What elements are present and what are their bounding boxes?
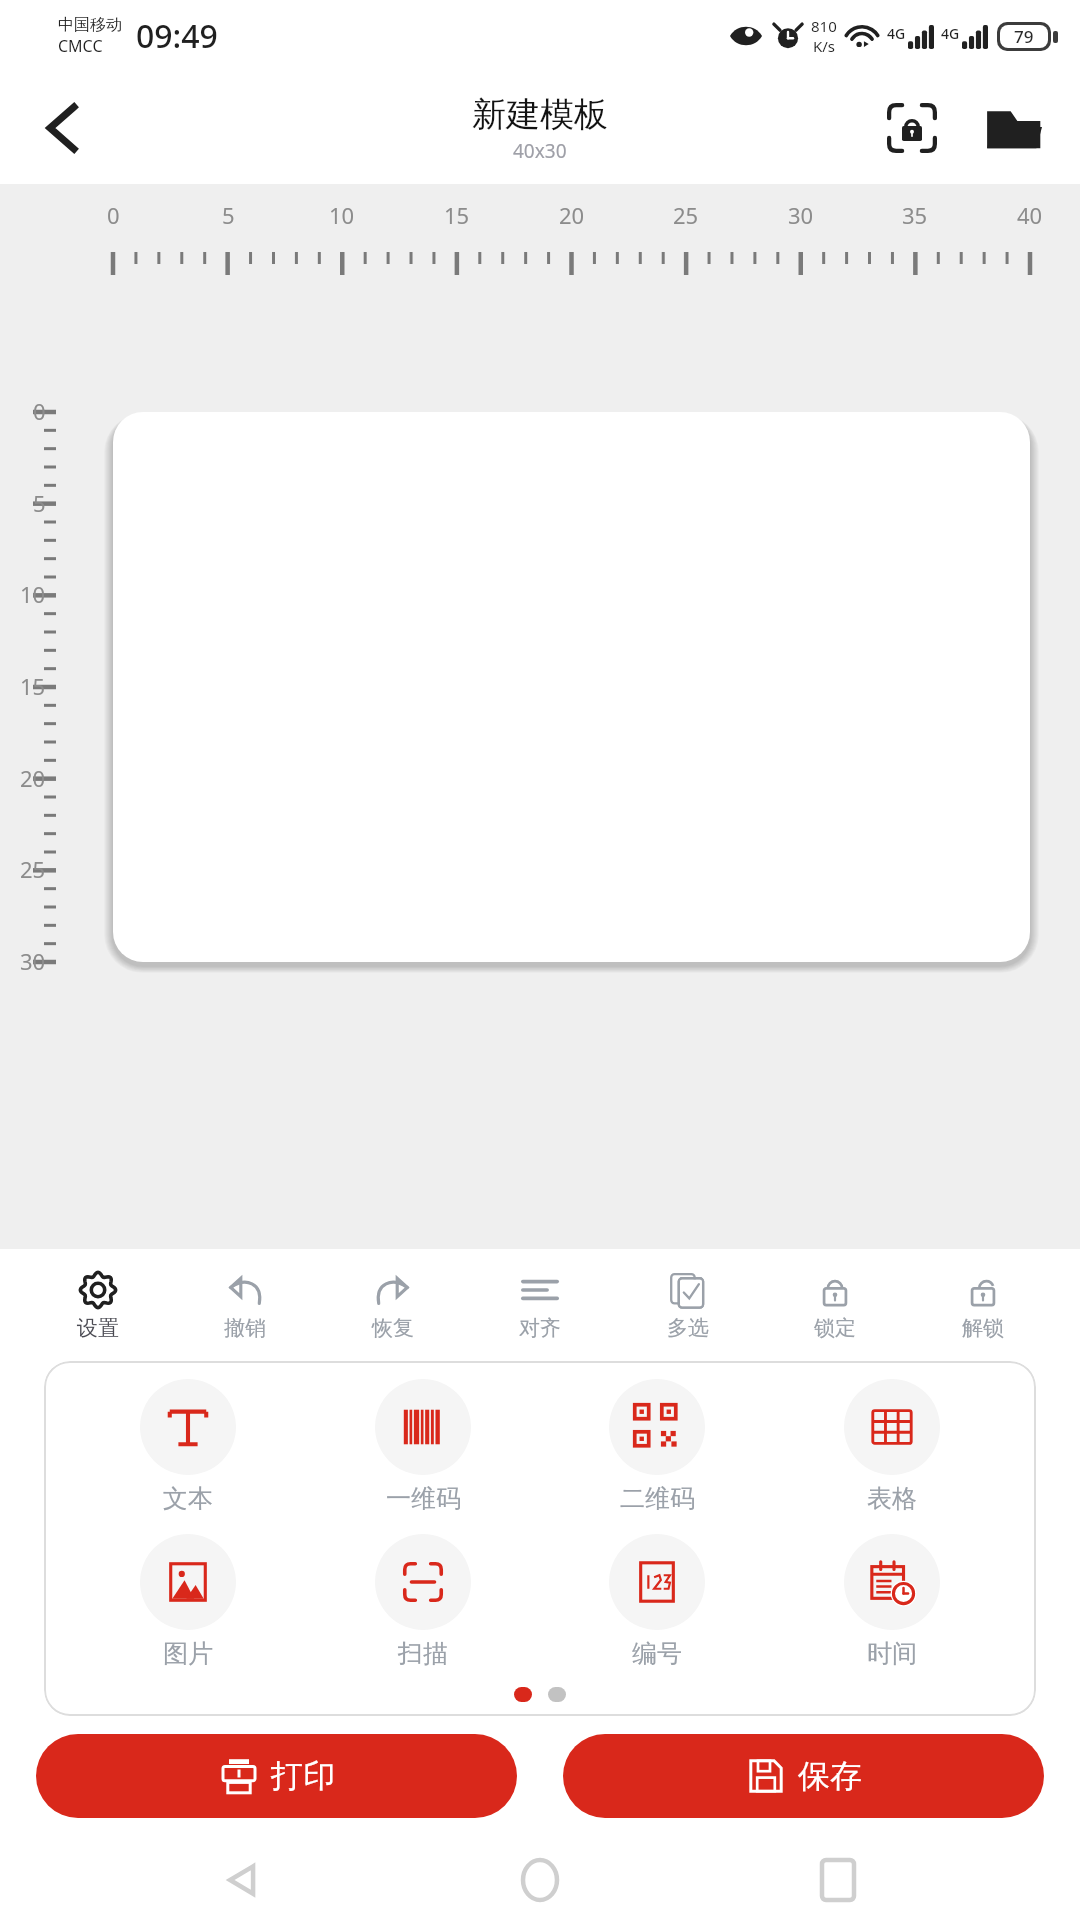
button[interactable]: 扫描 <box>333 1530 513 1673</box>
button[interactable]: 一维码 <box>333 1375 513 1518</box>
staticText: 10 <box>20 579 46 609</box>
staticText: 设置 <box>77 1315 119 1341</box>
staticText: 一维码 <box>386 1483 461 1514</box>
staticText: 扫描 <box>398 1638 448 1669</box>
staticText: 25 <box>20 854 46 884</box>
button[interactable]: 撤销 <box>185 1263 305 1347</box>
staticText: 锁定 <box>814 1315 856 1341</box>
staticText: 810 <box>811 16 837 36</box>
button[interactable]: Lock template <box>872 88 952 168</box>
button[interactable]: Back <box>22 88 102 168</box>
button[interactable]: 解锁 <box>923 1263 1043 1347</box>
staticText: 0 <box>33 396 46 426</box>
staticText: 二维码 <box>620 1483 695 1514</box>
staticText: 20 <box>559 200 585 230</box>
button[interactable]: 打印 <box>36 1734 517 1818</box>
staticText: 文本 <box>163 1483 213 1514</box>
staticText: K/s <box>813 36 836 56</box>
staticText: 保存 <box>798 1756 862 1796</box>
staticText: 15 <box>20 671 46 701</box>
staticText: CMCC <box>58 35 103 57</box>
button[interactable]: 表格 <box>802 1375 982 1518</box>
staticText: 09:49 <box>136 14 218 58</box>
staticText: 恢复 <box>372 1315 414 1341</box>
staticText: 15 <box>444 200 470 230</box>
staticText: 30 <box>20 946 46 976</box>
button[interactable]: Back <box>188 1840 298 1920</box>
staticText: 打印 <box>271 1756 335 1796</box>
staticText: 编号 <box>632 1638 682 1669</box>
staticText: 对齐 <box>519 1315 561 1341</box>
staticText: 10 <box>329 200 355 230</box>
staticText: 5 <box>222 200 235 230</box>
staticText: 40 <box>1017 200 1043 230</box>
button[interactable]: Home <box>485 1840 595 1920</box>
staticText: 4G <box>941 24 960 43</box>
staticText: 解锁 <box>962 1315 1004 1341</box>
staticText: 新建模板 <box>472 93 608 136</box>
staticText: 图片 <box>163 1638 213 1669</box>
staticText: 5 <box>33 488 46 518</box>
button[interactable]: 对齐 <box>480 1263 600 1347</box>
staticText: 20 <box>20 763 46 793</box>
staticText: 0 <box>107 200 120 230</box>
button[interactable]: 多选 <box>628 1263 748 1347</box>
staticText: 35 <box>902 200 928 230</box>
button[interactable]: 图片 <box>98 1530 278 1673</box>
staticText: 4G <box>887 24 906 43</box>
button[interactable]: 保存 <box>563 1734 1044 1818</box>
button[interactable]: 设置 <box>38 1263 158 1347</box>
button[interactable]: 编号 <box>567 1530 747 1673</box>
button[interactable]: Recents <box>783 1840 893 1920</box>
button[interactable]: 文本 <box>98 1375 278 1518</box>
staticText: 表格 <box>867 1483 917 1514</box>
staticText: 多选 <box>667 1315 709 1341</box>
staticText: 30 <box>788 200 814 230</box>
button[interactable]: Open templates folder <box>974 88 1054 168</box>
button[interactable]: 时间 <box>802 1530 982 1673</box>
button[interactable]: 二维码 <box>567 1375 747 1518</box>
staticText: 79 <box>1014 25 1034 48</box>
button[interactable]: 锁定 <box>775 1263 895 1347</box>
staticText: 25 <box>673 200 699 230</box>
staticText: 撤销 <box>224 1315 266 1341</box>
staticText: 中国移动 <box>58 15 122 35</box>
staticText: 40x30 <box>513 138 567 164</box>
staticText: 时间 <box>867 1638 917 1669</box>
button[interactable]: 恢复 <box>333 1263 453 1347</box>
